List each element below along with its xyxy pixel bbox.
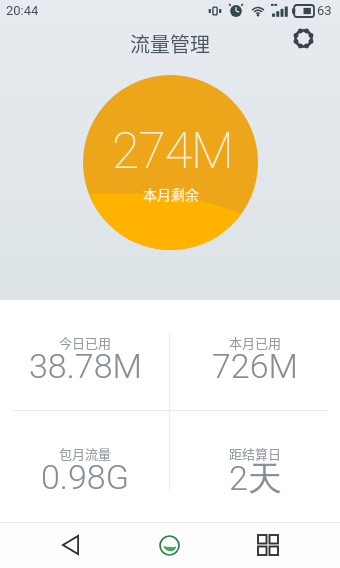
staticText: 包月流量 <box>59 444 112 463</box>
button[interactable]: 包月流量 <box>0 410 170 508</box>
button[interactable]: 距结算日 <box>170 410 340 508</box>
staticText: 274M <box>112 122 233 181</box>
staticText: 20:44 <box>6 3 39 18</box>
button[interactable]: 今日已用 <box>0 300 170 410</box>
staticText: 726M <box>212 346 298 386</box>
button[interactable]: 本月已用 <box>170 300 340 410</box>
button[interactable]: Recent apps <box>244 522 292 568</box>
staticText: 2天 <box>229 457 282 500</box>
button[interactable]: Home <box>145 522 193 568</box>
staticText: 63 <box>317 3 332 18</box>
staticText: 本月已用 <box>229 333 282 352</box>
staticText: 今日已用 <box>59 333 112 352</box>
staticText: 0.98G <box>41 457 129 497</box>
staticText: 本月剩余 <box>143 184 199 204</box>
button[interactable]: Back <box>46 522 94 568</box>
staticText: 距结算日 <box>229 444 282 463</box>
staticText: 流量管理 <box>130 29 210 58</box>
staticText: 38.78M <box>29 346 142 386</box>
button[interactable]: Settings <box>287 22 319 54</box>
